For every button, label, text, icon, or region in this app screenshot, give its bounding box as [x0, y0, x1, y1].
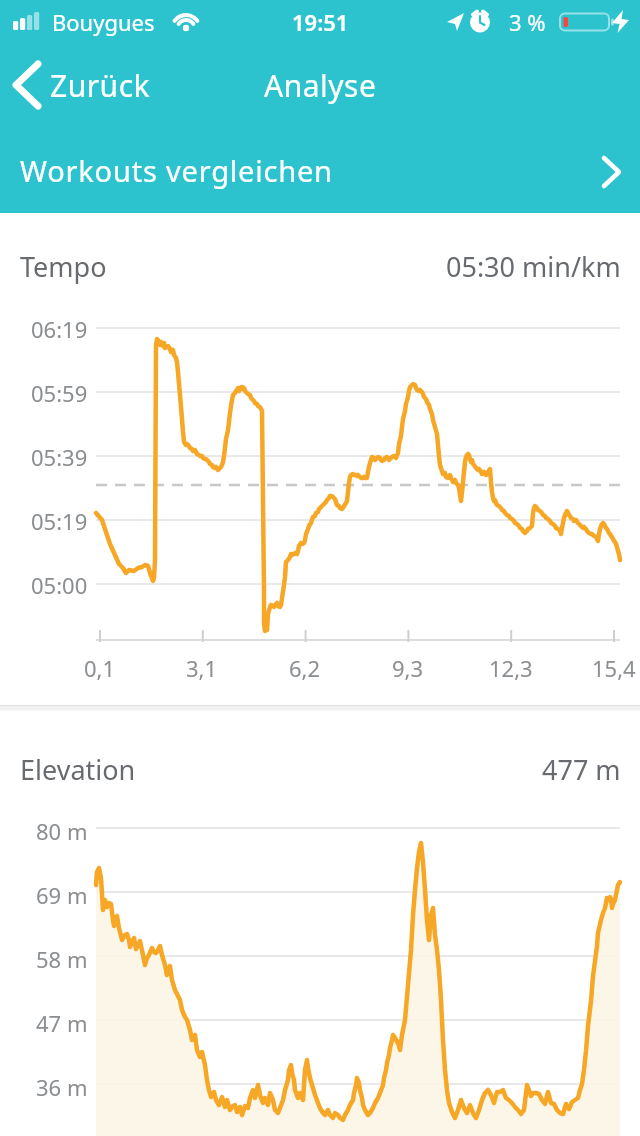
button[interactable]: Zurück: [0, 55, 180, 115]
staticText: 6,2: [289, 653, 321, 683]
staticText: 05:00: [31, 570, 88, 600]
staticText: 06:19: [31, 314, 88, 344]
staticText: 05:30 min/km: [446, 248, 621, 285]
staticText: 477 m: [542, 751, 621, 788]
staticText: 9,3: [392, 653, 424, 683]
staticText: 15,4: [592, 653, 636, 683]
staticText: 3,1: [186, 653, 218, 683]
staticText: Bouygues: [52, 7, 155, 37]
staticText: 36 m: [36, 1072, 88, 1102]
staticText: 69 m: [36, 880, 88, 910]
staticText: Zurück: [50, 65, 151, 106]
staticText: Elevation: [20, 751, 136, 788]
staticText: Analyse: [264, 65, 377, 106]
staticText: 05:19: [31, 506, 88, 536]
staticText: 05:59: [31, 378, 88, 408]
staticText: 12,3: [489, 653, 533, 683]
staticText: 80 m: [36, 816, 88, 846]
staticText: 0,1: [84, 653, 116, 683]
staticText: 58 m: [36, 944, 88, 974]
staticText: 47 m: [36, 1008, 88, 1038]
staticText: Tempo: [20, 248, 107, 285]
staticText: 19:51: [292, 7, 349, 37]
staticText: Workouts vergleichen: [20, 151, 333, 190]
staticText: 05:39: [31, 442, 88, 472]
button[interactable]: Workouts vergleichen: [0, 127, 640, 213]
staticText: 3 %: [509, 7, 546, 37]
